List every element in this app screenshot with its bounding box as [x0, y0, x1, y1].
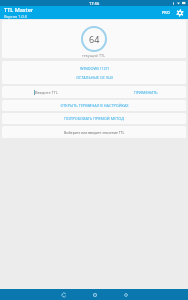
staticText: текущий TTL: [82, 53, 106, 58]
button[interactable]: PRO: [161, 8, 171, 17]
staticText: Введите TTL: [35, 90, 58, 95]
button[interactable]: ПРИМЕНИТЬ: [132, 88, 160, 97]
button[interactable]: ОСТАЛЬНЫЕ ОС (64): [2, 75, 186, 80]
staticText: TTL Master: [4, 6, 34, 13]
button[interactable]: Recents: [120, 289, 131, 300]
staticText: Выберите или введите значение TTL: [64, 130, 125, 135]
button[interactable]: Settings: [174, 7, 185, 18]
staticText: WINDOWS (127): [80, 66, 109, 71]
button[interactable]: Home: [89, 289, 100, 300]
staticText: ОСТАЛЬНЫЕ ОС (64): [76, 75, 113, 80]
staticText: PRO: [162, 10, 170, 15]
staticText: Версия 1.0.0: [4, 14, 27, 19]
staticText: 64: [89, 33, 100, 45]
button[interactable]: ПОПРОБОВАТЬ ПРЯМОЙ МЕТОД: [2, 113, 186, 124]
staticText: ПРИМЕНИТЬ: [134, 90, 158, 95]
button[interactable]: WINDOWS (127): [2, 66, 186, 71]
staticText: 17:56: [89, 1, 100, 6]
staticText: ОТКРЫТЬ ТЕРМИНАЛ В НАСТРОЙКАХ: [60, 103, 129, 108]
staticText: ПОПРОБОВАТЬ ПРЯМОЙ МЕТОД: [64, 116, 124, 121]
button[interactable]: Back: [58, 289, 69, 300]
button[interactable]: ОТКРЫТЬ ТЕРМИНАЛ В НАСТРОЙКАХ: [2, 100, 186, 111]
